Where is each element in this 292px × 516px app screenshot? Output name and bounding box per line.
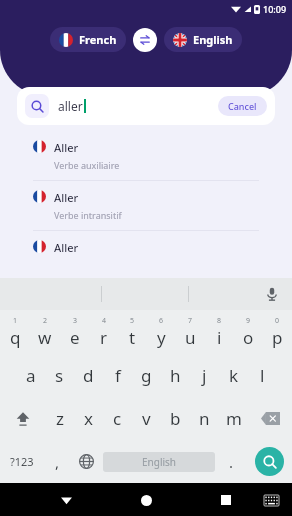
staticText: 0 (275, 316, 280, 326)
staticText: , (55, 452, 60, 472)
staticText: f (115, 364, 121, 387)
button[interactable]: 7 (176, 310, 205, 354)
staticText: 10:09 (263, 3, 287, 15)
button[interactable]: z (45, 397, 74, 440)
staticText: English (193, 32, 233, 47)
staticText: English (142, 455, 177, 469)
staticText: d (83, 364, 94, 387)
staticText: 1 (13, 316, 18, 326)
staticText: s (55, 364, 64, 387)
staticText: Verbe auxiliaire (54, 159, 120, 171)
button[interactable]: f (103, 354, 132, 397)
staticText: h (170, 364, 181, 387)
staticText: n (199, 407, 210, 430)
staticText: aller (58, 98, 83, 114)
button[interactable]: b (161, 397, 190, 440)
staticText: m (226, 407, 242, 430)
button[interactable]: d (74, 354, 103, 397)
staticText: u (185, 326, 196, 349)
staticText: t (129, 326, 136, 349)
button[interactable]: g (132, 354, 161, 397)
staticText: . (229, 452, 234, 472)
button[interactable]: Cancel (218, 96, 267, 116)
button[interactable]: French (50, 27, 126, 52)
button[interactable]: Aller (0, 231, 292, 264)
staticText: Aller (54, 140, 79, 155)
staticText: ?123 (10, 454, 34, 469)
button[interactable]: Aller (0, 131, 292, 180)
button[interactable]: aller (17, 87, 275, 125)
button[interactable]: 0 (263, 310, 292, 354)
button[interactable]: ?123 (0, 440, 43, 483)
staticText: r (100, 326, 108, 349)
staticText: 6 (159, 316, 164, 326)
staticText: y (157, 326, 166, 349)
button[interactable]: s (45, 354, 74, 397)
staticText: i (217, 326, 222, 349)
button[interactable]: Voice input (261, 283, 283, 305)
staticText: 3 (73, 316, 78, 326)
button[interactable]: Search (255, 447, 284, 476)
button[interactable]: 1 (0, 310, 30, 354)
button[interactable]: Recents (213, 487, 239, 513)
button[interactable]: 3 (60, 310, 89, 354)
staticText: w (38, 326, 52, 349)
staticText: g (141, 364, 152, 387)
staticText: Aller (54, 190, 79, 205)
button[interactable]: Aller (0, 181, 292, 230)
staticText: 8 (217, 316, 222, 326)
button[interactable]: Change language (72, 440, 101, 483)
button[interactable]: , (43, 440, 72, 483)
staticText: Verbe intransitif (54, 209, 122, 221)
button[interactable]: Home (133, 487, 159, 513)
staticText: 2 (43, 316, 48, 326)
button[interactable]: c (103, 397, 132, 440)
staticText: b (170, 407, 181, 430)
staticText: a (26, 364, 36, 387)
button[interactable]: Backspace (248, 397, 292, 440)
button[interactable]: Shift (0, 397, 45, 440)
button[interactable]: 9 (234, 310, 263, 354)
button[interactable]: Back (53, 487, 79, 513)
staticText: French (79, 32, 117, 47)
staticText: c (113, 407, 122, 430)
staticText: 4 (102, 316, 107, 326)
staticText: o (243, 326, 254, 349)
button[interactable]: n (190, 397, 219, 440)
button[interactable]: k (219, 354, 248, 397)
button[interactable]: j (190, 354, 219, 397)
staticText: l (260, 364, 265, 387)
button[interactable]: English (164, 27, 242, 52)
button[interactable]: 5 (118, 310, 147, 354)
button[interactable]: 4 (89, 310, 118, 354)
staticText: 5 (130, 316, 135, 326)
button[interactable]: 6 (147, 310, 176, 354)
button[interactable]: a (16, 354, 45, 397)
staticText: Aller (54, 240, 79, 255)
button[interactable]: m (219, 397, 248, 440)
staticText: q (10, 326, 21, 349)
button[interactable]: . (217, 440, 246, 483)
staticText: e (70, 326, 80, 349)
staticText: 7 (188, 316, 193, 326)
button[interactable]: English (103, 452, 215, 472)
staticText: 9 (246, 316, 251, 326)
staticText: j (202, 364, 207, 387)
button[interactable]: h (161, 354, 190, 397)
button[interactable]: x (74, 397, 103, 440)
staticText: x (84, 407, 93, 430)
button[interactable]: v (132, 397, 161, 440)
staticText: p (272, 326, 283, 349)
button[interactable]: 8 (205, 310, 234, 354)
staticText: Cancel (228, 100, 257, 112)
button[interactable]: 2 (30, 310, 60, 354)
button[interactable]: Keyboard (258, 487, 284, 513)
button[interactable]: Swap languages (133, 28, 157, 52)
staticText: v (142, 407, 151, 430)
staticText: k (229, 364, 239, 387)
staticText: z (56, 407, 64, 430)
button[interactable]: l (248, 354, 277, 397)
